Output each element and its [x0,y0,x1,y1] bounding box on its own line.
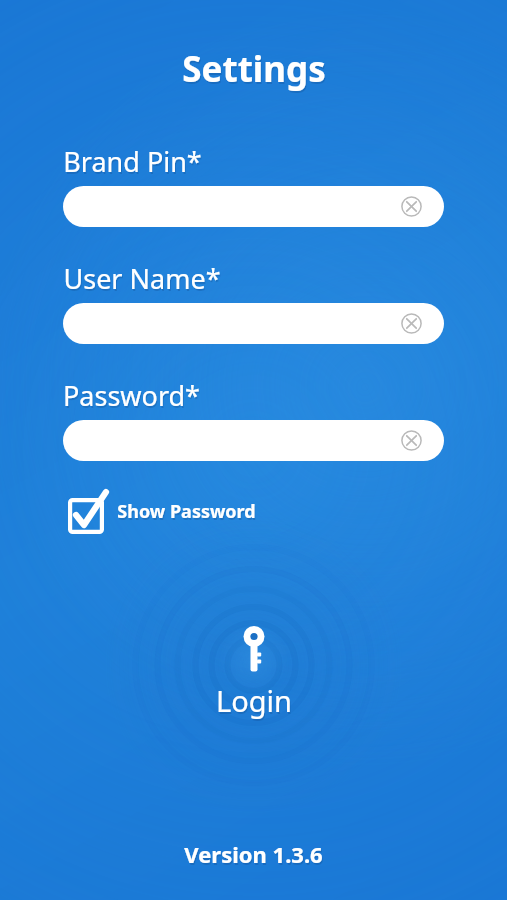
staticText: Password* [64,379,201,416]
staticText: Show Password [118,501,257,526]
button[interactable]: Show Password [63,489,266,533]
button[interactable]: Clear [63,420,444,461]
staticText: Settings [183,47,327,95]
staticText: User Name* [64,262,222,299]
staticText: Login [217,683,293,722]
button[interactable]: Clear [63,303,444,344]
staticText: Brand Pin* [64,145,203,182]
staticText: Show Password [117,499,256,524]
other: Clear [401,313,422,334]
staticText: Login [216,681,292,720]
other: Clear [401,196,422,217]
button[interactable]: Clear [63,186,444,227]
other: Clear [401,430,422,451]
other: Login [237,625,271,675]
staticText: Brand Pin* [63,143,202,180]
staticText: Version 1.3.6 [185,841,324,871]
staticText: Version 1.3.6 [184,839,323,869]
staticText: Password* [63,377,200,414]
staticText: User Name* [63,260,221,297]
button[interactable]: Login [192,621,316,724]
staticText: Settings [182,45,326,93]
